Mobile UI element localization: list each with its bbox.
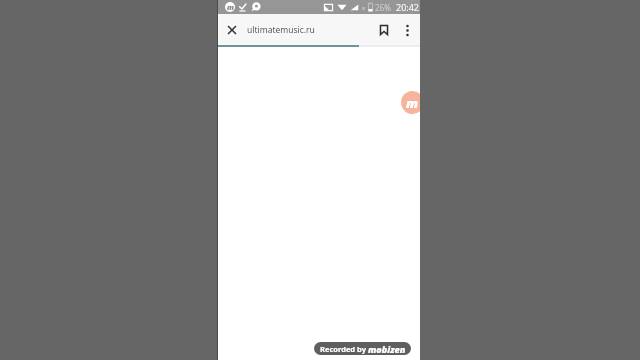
staticText: Recorded by bbox=[320, 344, 368, 354]
staticText: m bbox=[406, 94, 419, 112]
button[interactable]: More options bbox=[394, 17, 420, 43]
staticText: 26% bbox=[375, 2, 391, 13]
button[interactable]: Close bbox=[218, 15, 247, 45]
button[interactable]: Bookmark bbox=[370, 16, 398, 44]
staticText: mobizen bbox=[368, 343, 406, 355]
staticText: m bbox=[227, 2, 234, 12]
staticText: ultimatemusic.ru bbox=[247, 24, 315, 36]
staticText: 20:42 bbox=[396, 1, 420, 13]
